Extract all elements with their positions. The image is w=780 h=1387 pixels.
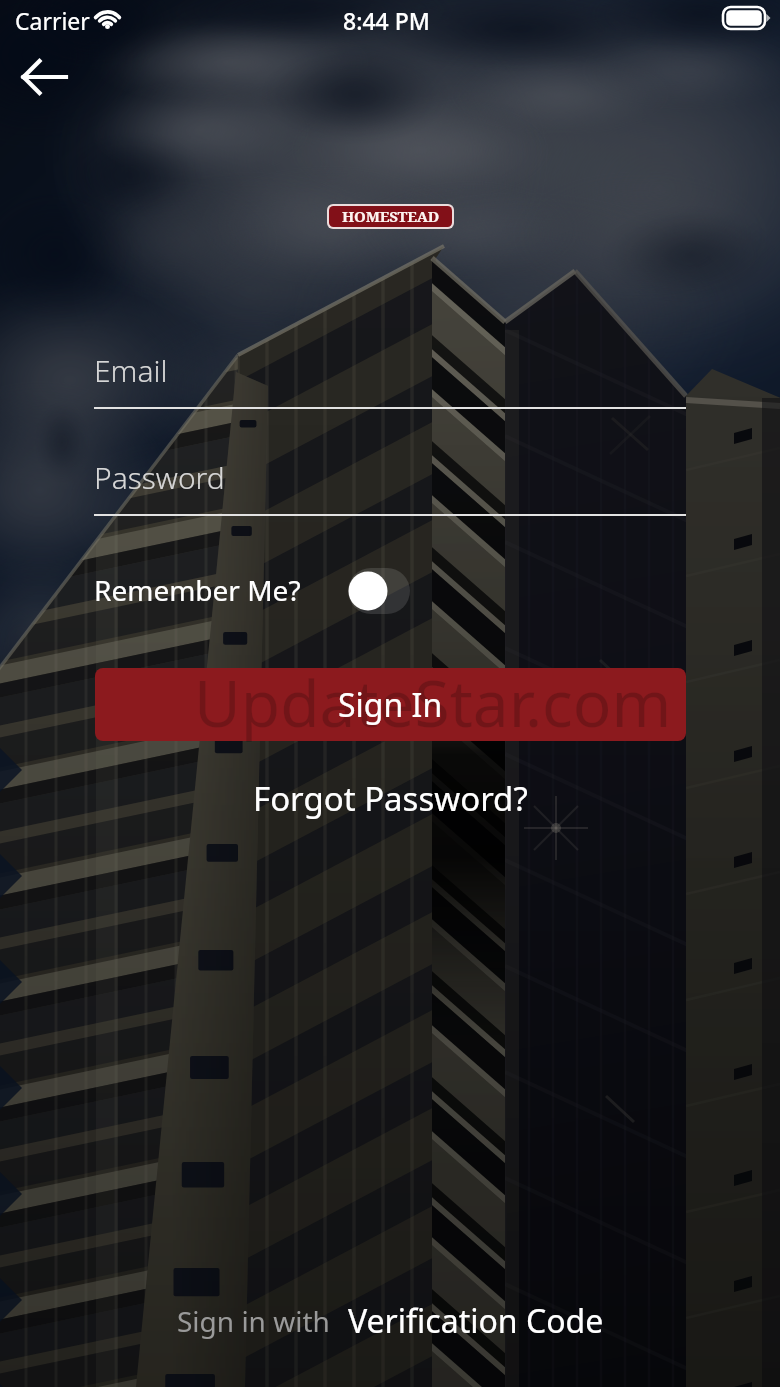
staticText: Sign In xyxy=(338,683,443,727)
staticText: Remember Me? xyxy=(94,571,301,609)
staticText: Password xyxy=(94,457,225,498)
button[interactable]: Remember Me xyxy=(342,566,418,616)
staticText: UpdateStar.com xyxy=(194,659,672,746)
button[interactable]: Forgot Password? xyxy=(245,772,536,825)
staticText: Sign in with xyxy=(177,1302,330,1340)
staticText: Verification Code xyxy=(348,1299,604,1343)
button[interactable]: Password xyxy=(94,447,686,509)
button[interactable]: Back xyxy=(0,52,90,102)
staticText: Forgot Password? xyxy=(253,776,528,821)
button[interactable]: Email xyxy=(94,340,686,402)
button[interactable]: Sign In xyxy=(95,668,686,741)
staticText: Carrier xyxy=(15,5,90,36)
staticText: Email xyxy=(94,350,168,391)
button[interactable]: Verification Code xyxy=(348,1299,604,1343)
staticText: 8:44 PM xyxy=(343,5,430,36)
staticText: HOMESTEAD xyxy=(342,206,440,226)
